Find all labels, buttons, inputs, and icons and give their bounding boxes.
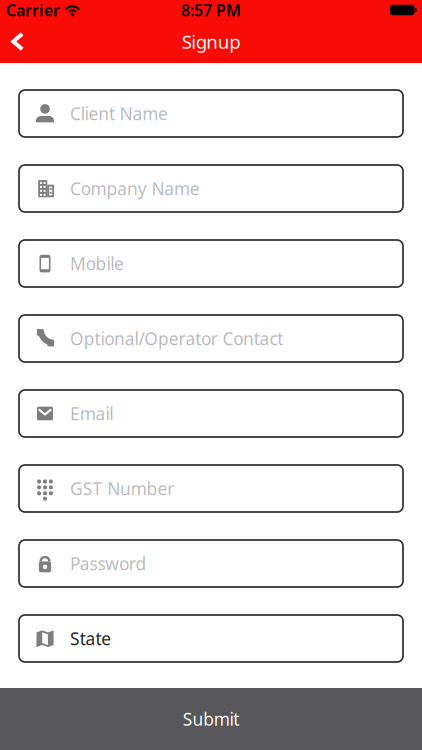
button[interactable]: Optional/Operator Contact <box>19 315 403 362</box>
button[interactable]: State <box>19 615 403 662</box>
staticText: Carrier <box>6 0 60 21</box>
staticText: Signup <box>182 29 240 54</box>
button[interactable]: Mobile <box>19 240 403 287</box>
staticText: GST Number <box>70 477 174 500</box>
button[interactable]: Back <box>0 20 40 63</box>
button[interactable]: GST Number <box>19 465 403 512</box>
button[interactable]: Company Name <box>19 165 403 212</box>
staticText: Client Name <box>70 102 168 125</box>
staticText: Password <box>70 552 147 575</box>
staticText: Email <box>70 402 113 425</box>
staticText: Submit <box>183 707 239 730</box>
button[interactable]: Client Name <box>19 90 403 137</box>
staticText: State <box>70 627 111 650</box>
staticText: Mobile <box>70 252 124 275</box>
button[interactable]: Email <box>19 390 403 437</box>
staticText: 8:57 PM <box>181 0 241 21</box>
button[interactable]: Password <box>19 540 403 587</box>
staticText: Optional/Operator Contact <box>70 327 283 350</box>
button[interactable]: Submit <box>0 688 422 750</box>
staticText: Company Name <box>70 177 200 200</box>
